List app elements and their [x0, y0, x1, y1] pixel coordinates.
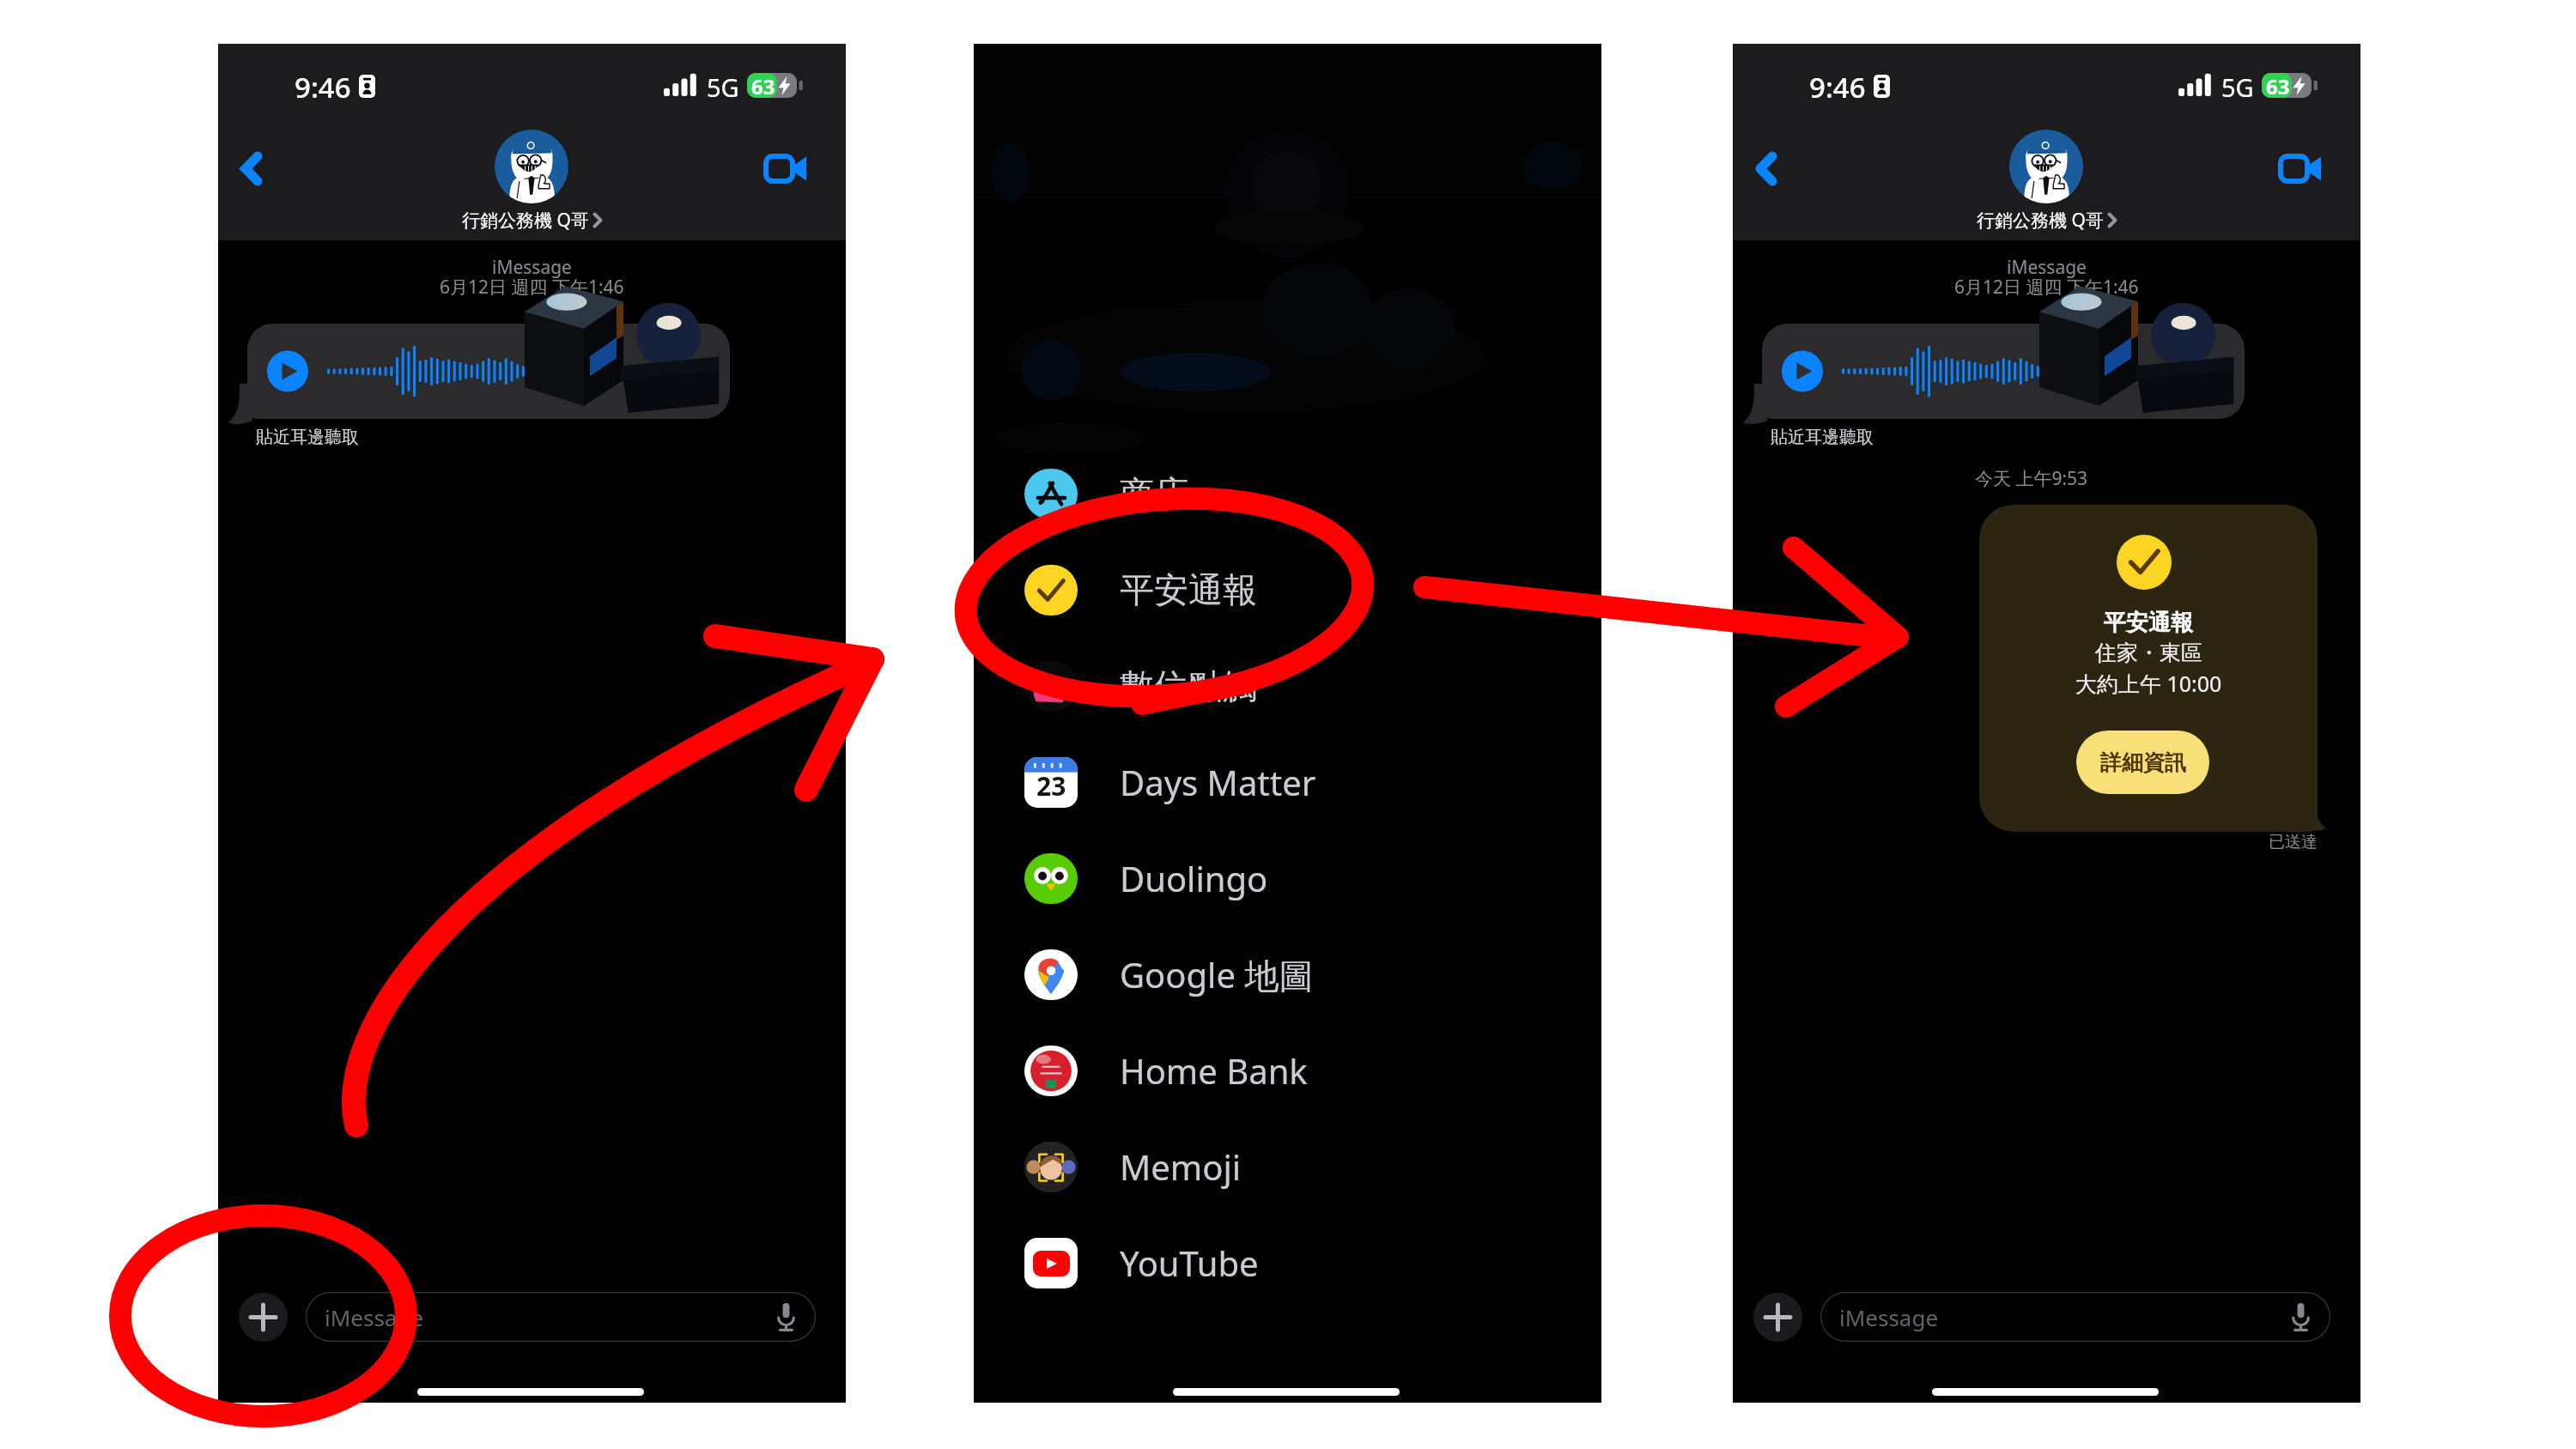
staticText: 6月12日 週四 下午1:46 — [1954, 275, 2139, 300]
staticText: 住家・東區 — [2095, 640, 2202, 666]
button[interactable]: 商店 — [974, 446, 1601, 542]
staticText: YouTube — [1120, 1240, 1259, 1286]
button[interactable]: 23 — [974, 734, 1601, 830]
button[interactable]: YouTube — [974, 1215, 1601, 1311]
button[interactable] — [1762, 324, 2245, 419]
staticText: 已送達 — [2269, 832, 2318, 852]
staticText: 9:46 — [1809, 68, 1866, 106]
staticText: iMessage — [325, 1302, 424, 1332]
staticText: 63 — [751, 72, 775, 97]
button[interactable]: Back — [226, 142, 277, 194]
button[interactable]: FaceTime video call — [2270, 142, 2330, 194]
button[interactable]: iMessage — [306, 1292, 816, 1342]
staticText: 平安通報 — [2104, 609, 2193, 637]
staticText: 數位點觸 — [1120, 664, 1257, 707]
button[interactable]: 行銷公務機 Q哥 — [437, 128, 626, 233]
staticText: Google 地圖 — [1120, 951, 1314, 998]
button[interactable] — [247, 324, 730, 419]
staticText: 行銷公務機 Q哥 — [1977, 208, 2104, 233]
button[interactable]: 詳細資訊 — [2076, 731, 2209, 794]
staticText: 63 — [2266, 72, 2290, 97]
staticText: iMessage — [1839, 1302, 1939, 1332]
button[interactable]: Duolingo — [974, 830, 1601, 926]
button[interactable]: Home Bank — [974, 1022, 1601, 1119]
staticText: 貼近耳邊聽取 — [1771, 427, 1874, 448]
staticText: 行銷公務機 Q哥 — [462, 208, 589, 233]
button[interactable]: More apps — [1753, 1293, 1802, 1342]
staticText: 9:46 — [295, 68, 351, 106]
staticText: 貼近耳邊聽取 — [256, 427, 359, 448]
button[interactable]: Google 地圖 — [974, 926, 1601, 1022]
staticText: Days Matter — [1120, 759, 1316, 805]
staticText: 詳細資訊 — [2100, 749, 2186, 776]
staticText: iMessage — [2007, 255, 2087, 280]
staticText: 商店 — [1120, 472, 1188, 515]
button[interactable]: FaceTime video call — [756, 142, 816, 194]
staticText: iMessage — [492, 255, 572, 280]
button[interactable]: 平安通報 — [1979, 505, 2318, 832]
staticText: 23 — [1036, 768, 1066, 803]
staticText: 6月12日 週四 下午1:46 — [440, 275, 624, 300]
staticText: 平安通報 — [1120, 568, 1257, 611]
button[interactable]: Memoji — [974, 1119, 1601, 1215]
button[interactable]: More apps — [239, 1293, 288, 1342]
button[interactable]: 平安通報 — [974, 542, 1601, 638]
staticText: Duolingo — [1120, 855, 1268, 901]
button[interactable]: iMessage — [1820, 1292, 2330, 1342]
staticText: Memoji — [1120, 1143, 1242, 1190]
button[interactable]: 行銷公務機 Q哥 — [1952, 128, 2141, 233]
staticText: 5G — [2221, 70, 2254, 104]
staticText: 5G — [707, 70, 739, 104]
staticText: 今天 上午9:53 — [1975, 466, 2088, 491]
staticText: Home Bank — [1120, 1047, 1308, 1094]
staticText: 大約上午 10:00 — [2075, 669, 2222, 698]
button[interactable]: Back — [1741, 142, 1792, 194]
button[interactable]: 數位點觸 — [974, 638, 1601, 734]
